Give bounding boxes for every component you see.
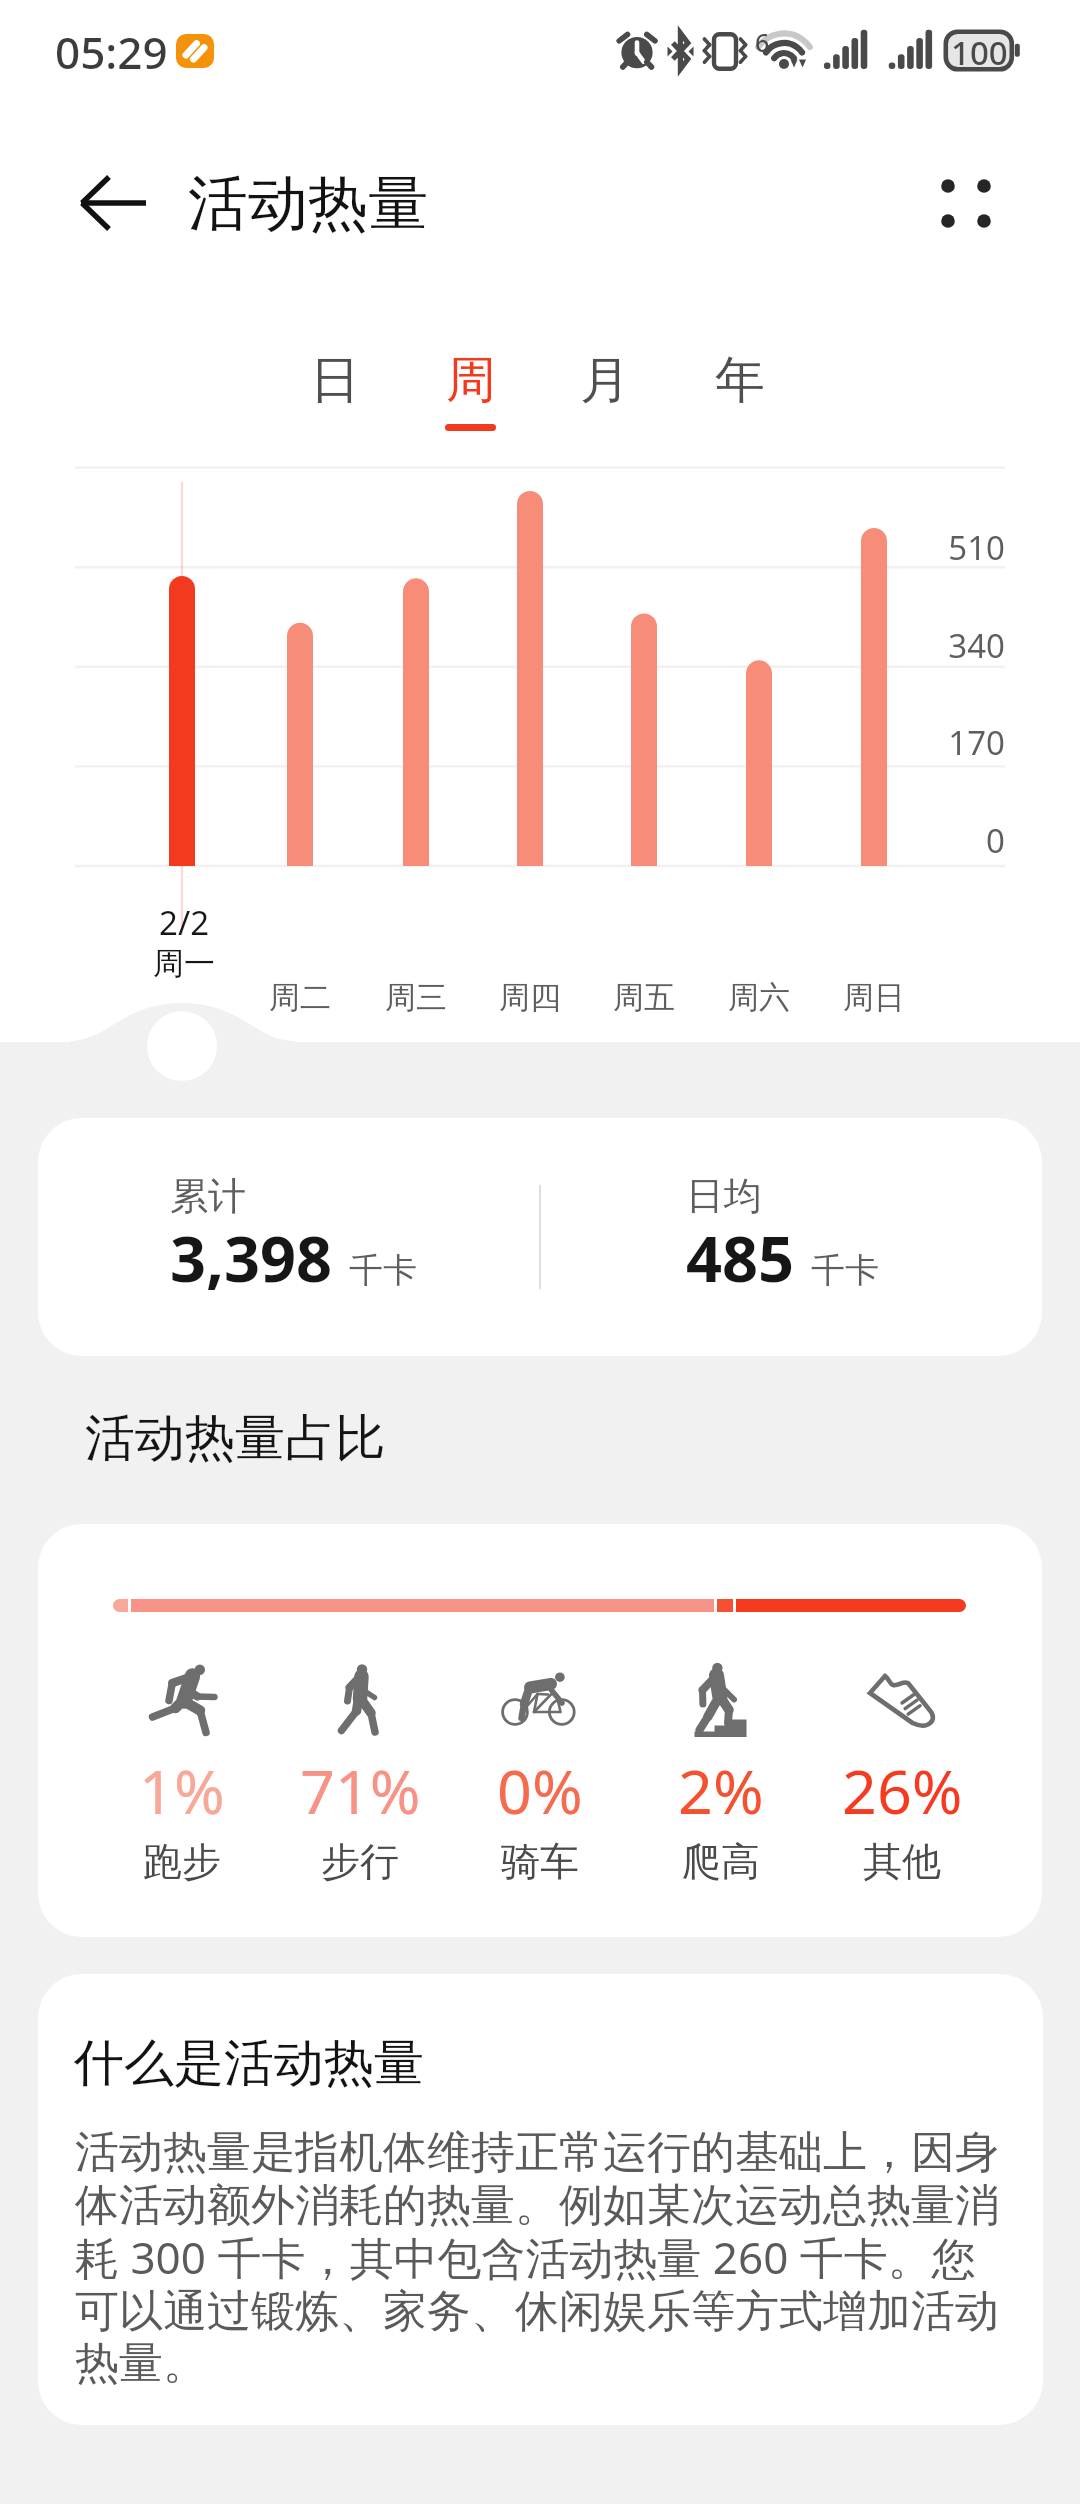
button[interactable]: 周 [408, 349, 532, 449]
staticText: 2% [678, 1749, 764, 1832]
button[interactable]: 71% [270, 1657, 450, 1881]
staticText: 周日 [843, 978, 905, 1017]
staticText: 年 [715, 349, 765, 412]
staticText: 日均 [686, 1172, 762, 1220]
staticText: 活动热量是指机体维持正常运行的基础上，因身体活动额外消耗的热量。例如某次运动总热… [75, 2125, 1005, 2391]
staticText: 周二 [269, 978, 331, 1017]
staticText: 月 [580, 349, 630, 412]
staticText: 周三 [385, 978, 447, 1017]
button[interactable]: 0% [450, 1657, 630, 1881]
button[interactable]: 2% [631, 1657, 811, 1881]
button[interactable]: 月 [543, 349, 667, 449]
staticText: 周六 [728, 978, 790, 1017]
staticText: 6 [755, 25, 770, 59]
button[interactable]: 累计 [38, 1118, 1042, 1356]
staticText: 活动热量占比 [85, 1407, 385, 1470]
staticText: 周 [446, 349, 496, 412]
staticText: 100 [951, 30, 1008, 75]
button[interactable]: 年 [678, 349, 802, 449]
button[interactable]: Back [62, 152, 164, 254]
staticText: 周五 [613, 978, 675, 1017]
staticText: 170 [948, 720, 1005, 765]
staticText: 累计 [170, 1172, 246, 1220]
button[interactable]: 26% [812, 1657, 992, 1881]
staticText: 步行 [321, 1837, 399, 1886]
staticText: 骑车 [501, 1837, 579, 1886]
staticText: 0 [986, 818, 1005, 863]
staticText: 千卡 [811, 1249, 879, 1292]
staticText: 3,398 [170, 1215, 333, 1301]
staticText: 日 [310, 349, 360, 412]
staticText: 485 [686, 1215, 795, 1301]
staticText: 周一 [153, 944, 215, 983]
staticText: 活动热量 [188, 166, 428, 242]
staticText: 跑步 [143, 1837, 221, 1886]
staticText: 其他 [863, 1837, 941, 1886]
staticText: 0% [497, 1749, 583, 1832]
staticText: 什么是活动热量 [74, 2032, 424, 2095]
staticText: 周四 [499, 978, 561, 1017]
staticText: 2/2 [159, 900, 210, 945]
staticText: 爬高 [682, 1837, 760, 1886]
button[interactable]: 日 [273, 349, 397, 449]
button[interactable]: 1% [92, 1657, 272, 1881]
staticText: 26% [842, 1749, 963, 1832]
staticText: 510 [948, 525, 1005, 570]
staticText: 05:29 [55, 22, 168, 82]
button[interactable]: More options [916, 152, 1016, 252]
staticText: 1% [139, 1749, 225, 1832]
staticText: 340 [948, 623, 1005, 668]
staticText: 71% [300, 1749, 421, 1832]
staticText: 千卡 [349, 1249, 417, 1292]
